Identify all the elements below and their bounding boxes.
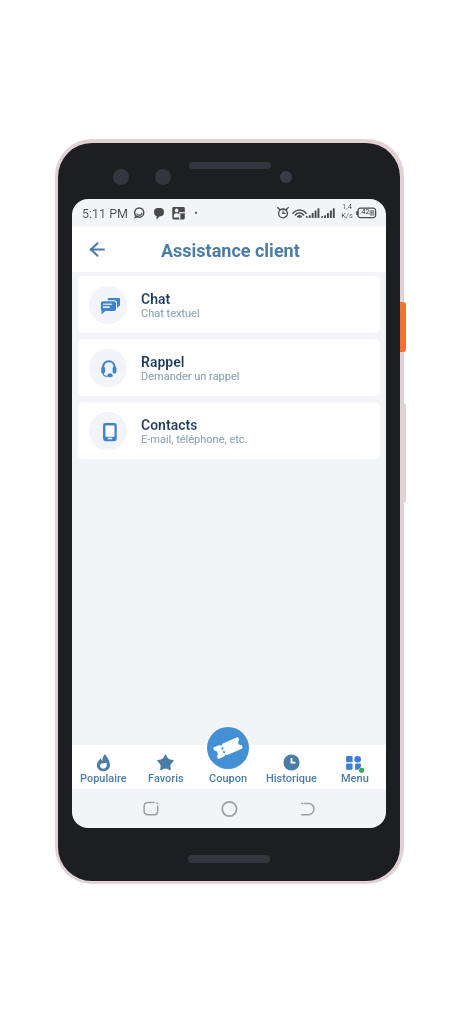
button[interactable]: Contacts [78,402,380,459]
button[interactable]: Menu [323,749,386,785]
staticText: Assistance client [161,240,300,261]
staticText: Favoris [148,772,184,785]
staticText: 1,4 K/s [341,202,353,220]
staticText: Populaire [80,772,127,785]
staticText: 5:11 PM [82,206,129,221]
button[interactable]: Populaire [72,749,134,785]
button[interactable]: Rappel [78,339,380,396]
staticText: Rappel [141,354,185,370]
button[interactable]: Historique [260,749,323,785]
button[interactable]: Chat [78,276,380,333]
staticText: E-mail, téléphone, etc. [141,433,248,446]
staticText: Menu [341,772,369,785]
staticText: Chat [141,291,171,307]
staticText: 42 [360,208,371,216]
staticText: Historique [266,772,317,785]
button[interactable]: Coupon [207,727,249,769]
button[interactable]: Favoris [134,749,197,785]
staticText: Coupon [209,772,248,785]
staticText: Contacts [141,417,198,433]
staticText: Chat textuel [141,307,200,320]
button[interactable]: Back [86,236,112,262]
staticText: Demander un rappel [141,370,240,383]
button[interactable]: Coupon [197,749,260,785]
